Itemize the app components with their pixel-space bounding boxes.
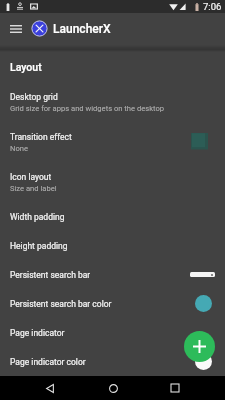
button[interactable]: Home <box>101 376 125 400</box>
button[interactable]: Recent apps <box>163 376 187 400</box>
staticText: LauncherX <box>53 22 111 36</box>
button[interactable]: Transition effect <box>0 122 225 162</box>
button[interactable]: Add <box>184 331 215 362</box>
staticText: Persistent search bar <box>10 270 91 280</box>
staticText: Layout <box>10 61 225 73</box>
staticText: Size and label <box>10 184 57 193</box>
button[interactable]: Page indicator <box>0 318 225 347</box>
staticText: None <box>10 144 28 153</box>
button[interactable]: Persistent search bar <box>0 260 225 289</box>
button[interactable]: Page indicator color <box>0 347 225 376</box>
button[interactable]: Navigation menu <box>0 12 31 46</box>
staticText: 7:06 <box>203 1 222 12</box>
staticText: Grid size for apps and widgets on the de… <box>10 104 165 113</box>
staticText: Page indicator <box>10 328 65 338</box>
staticText: Icon layout <box>10 172 52 182</box>
staticText: Width padding <box>10 212 65 222</box>
staticText: Height padding <box>10 241 68 251</box>
staticText: Page indicator color <box>10 357 86 367</box>
button[interactable]: Desktop grid <box>0 82 225 122</box>
staticText: Desktop grid <box>10 92 58 102</box>
staticText: Transition effect <box>10 132 72 142</box>
button[interactable]: Icon layout <box>0 162 225 202</box>
button[interactable]: Width padding <box>0 202 225 231</box>
button[interactable]: Height padding <box>0 231 225 260</box>
button[interactable]: Back <box>38 376 62 400</box>
staticText: Persistent search bar color <box>10 299 112 309</box>
button[interactable]: Persistent search bar color <box>0 289 225 318</box>
